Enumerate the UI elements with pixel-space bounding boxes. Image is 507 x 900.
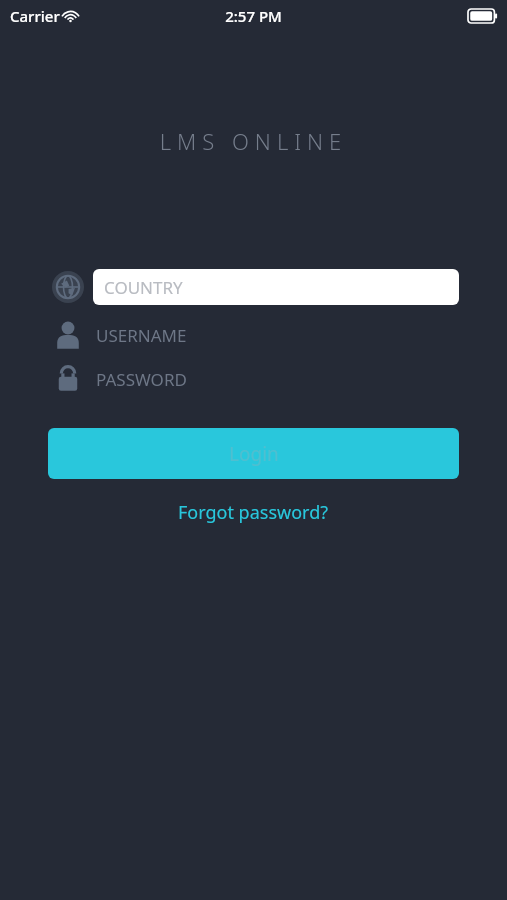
other: Password (54, 365, 82, 393)
staticText: COUNTRY (104, 276, 183, 299)
staticText: Login (229, 441, 279, 467)
staticText: 2:57 PM (0, 6, 507, 26)
staticText: Carrier (10, 6, 60, 26)
staticText: Forgot password? (178, 500, 329, 525)
button[interactable]: Country (0, 265, 507, 309)
button[interactable]: Forgot password? (168, 496, 339, 529)
staticText: USERNAME (96, 324, 187, 347)
button[interactable]: Username (0, 317, 507, 353)
other: Username (53, 320, 83, 350)
staticText: LMS ONLINE (0, 126, 507, 156)
button[interactable]: Login (48, 428, 459, 479)
button[interactable]: Password (0, 361, 507, 397)
other: Country (52, 271, 84, 303)
staticText: PASSWORD (96, 368, 187, 391)
